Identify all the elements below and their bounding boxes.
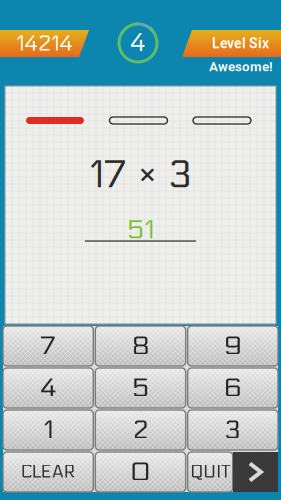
staticText: 51	[127, 214, 154, 246]
staticText: 4	[40, 372, 57, 404]
button[interactable]: 3	[188, 410, 278, 450]
staticText: 17 × 3	[89, 152, 192, 198]
staticText: CLEAR	[21, 462, 76, 482]
button[interactable]: QUIT	[188, 452, 233, 492]
staticText: 7	[40, 330, 56, 362]
staticText: 6	[224, 372, 242, 404]
button[interactable]: 1	[3, 410, 93, 450]
button[interactable]: 0	[95, 452, 186, 492]
button[interactable]: 6	[188, 368, 278, 408]
button[interactable]: 8	[95, 326, 186, 366]
staticText: 3	[224, 414, 241, 446]
button[interactable]: 2	[95, 410, 186, 450]
button[interactable]: 9	[188, 326, 278, 366]
button[interactable]: 7	[3, 326, 93, 366]
staticText: Level Six	[212, 35, 269, 52]
button[interactable]: Next	[233, 452, 278, 492]
staticText: 8	[131, 330, 149, 362]
staticText: 2	[132, 414, 148, 446]
staticText: 1	[43, 414, 53, 446]
staticText: 5	[132, 372, 149, 404]
staticText: 0	[130, 456, 151, 488]
staticText: QUIT	[190, 462, 230, 482]
staticText: 9	[224, 330, 242, 362]
staticText: 4	[129, 28, 146, 58]
staticText: Awesome!	[209, 59, 273, 75]
button[interactable]: 5	[95, 368, 186, 408]
button[interactable]: CLEAR	[3, 452, 93, 492]
staticText: 14214	[16, 30, 73, 57]
button[interactable]: 4	[3, 368, 93, 408]
